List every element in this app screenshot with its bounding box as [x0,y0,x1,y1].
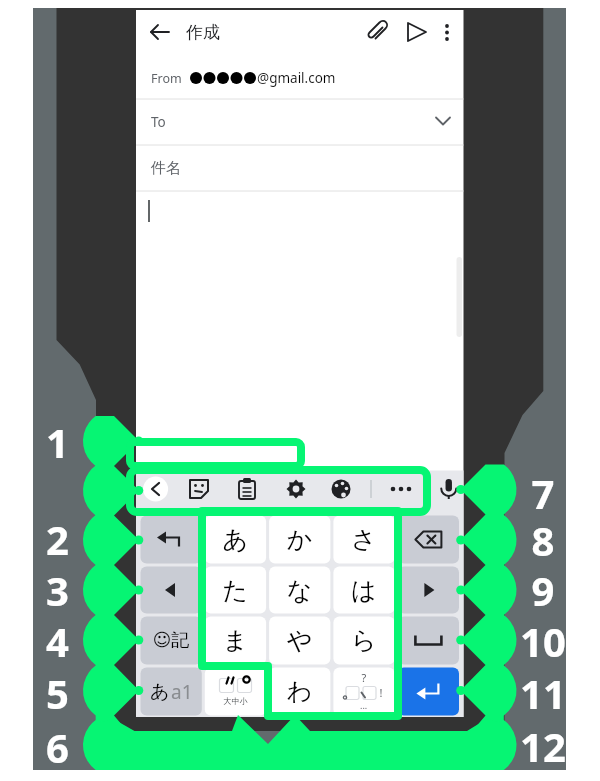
button[interactable] [0,0,600,781]
